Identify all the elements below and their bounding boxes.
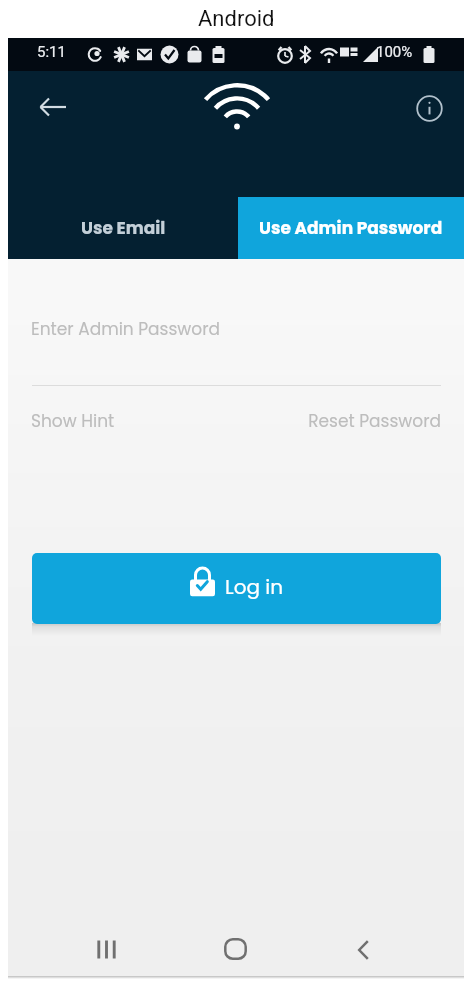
button[interactable]: Home — [213, 927, 257, 971]
staticText: Android — [198, 6, 275, 32]
staticText: Use Admin Password — [259, 216, 443, 240]
button[interactable]: Back — [341, 928, 385, 972]
button[interactable]: Show Hint — [31, 409, 115, 433]
staticText: Use Email — [81, 216, 166, 240]
button[interactable]: Use Admin Password — [238, 197, 464, 259]
staticText: 5:11 — [37, 43, 66, 61]
button[interactable]: Recent apps — [84, 927, 128, 971]
button[interactable]: Navigate back — [29, 83, 77, 131]
staticText: 100% — [376, 43, 413, 61]
button[interactable]: Log in — [32, 553, 441, 624]
staticText: Reset Password — [301, 409, 441, 433]
button[interactable]: Use Email — [8, 197, 238, 259]
staticText: Enter Admin Password — [31, 317, 221, 341]
staticText: Show Hint — [31, 409, 115, 433]
staticText: Log in — [225, 573, 284, 601]
button[interactable]: Information — [407, 86, 451, 130]
button[interactable]: Reset Password — [301, 409, 441, 433]
